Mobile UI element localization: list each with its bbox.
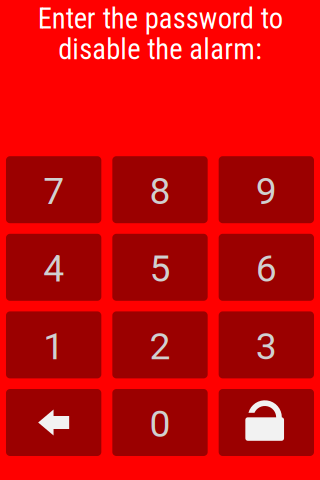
staticText: 1 xyxy=(43,324,64,368)
button[interactable]: 0 xyxy=(112,389,208,456)
staticText: 6 xyxy=(256,247,277,291)
button[interactable]: 5 xyxy=(112,234,208,301)
staticText: 3 xyxy=(256,324,277,368)
staticText: Enter the password to disable the alarm: xyxy=(37,2,282,66)
staticText: 7 xyxy=(43,169,64,213)
button[interactable]: 7 xyxy=(6,156,101,223)
staticText: 4 xyxy=(43,247,64,291)
staticText: 8 xyxy=(149,169,170,213)
button[interactable]: Delete xyxy=(6,389,101,456)
button[interactable]: Unlock xyxy=(219,389,314,456)
button[interactable]: 9 xyxy=(219,156,314,223)
button[interactable]: 2 xyxy=(112,311,208,378)
button[interactable]: 3 xyxy=(219,311,314,378)
button[interactable]: 4 xyxy=(6,234,101,301)
staticText: 0 xyxy=(149,402,170,446)
button[interactable]: 8 xyxy=(112,156,208,223)
staticText: 2 xyxy=(149,324,170,368)
staticText: 9 xyxy=(256,169,277,213)
button[interactable]: 6 xyxy=(219,234,314,301)
button[interactable]: 1 xyxy=(6,311,101,378)
staticText: 5 xyxy=(149,247,170,291)
